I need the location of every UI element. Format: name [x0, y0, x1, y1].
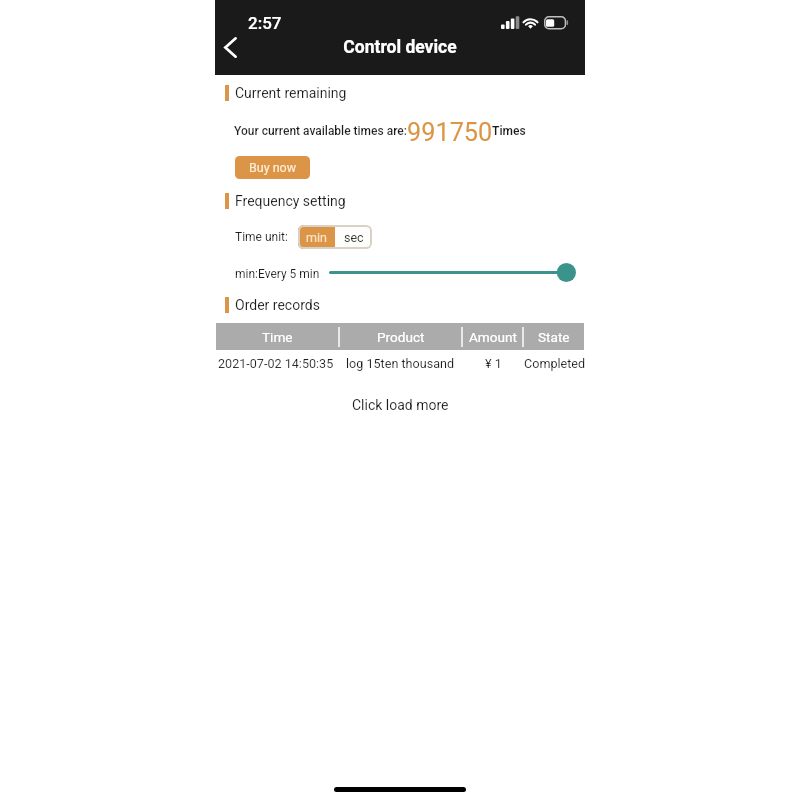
staticText: Click load more	[352, 397, 449, 413]
staticText: Current remaining	[235, 85, 347, 101]
button[interactable]: Back	[215, 32, 245, 62]
button[interactable]: min	[298, 225, 335, 249]
staticText: min	[306, 230, 327, 245]
button[interactable]: Buy now	[235, 156, 310, 179]
button[interactable]: Frequency slider	[329, 262, 576, 283]
staticText: 2:57	[248, 13, 282, 33]
button[interactable]: sec	[335, 225, 372, 249]
staticText: ¥ 1	[485, 356, 502, 371]
staticText: 2021-07-02 14:50:35	[218, 356, 334, 371]
staticText: Times	[492, 124, 526, 138]
staticText: Control device	[215, 37, 585, 58]
staticText: Amount	[469, 329, 517, 345]
staticText: Time	[262, 329, 293, 345]
staticText: log 15ten thousand	[346, 356, 455, 371]
staticText: sec	[344, 230, 364, 245]
staticText: min:Every 5 min	[235, 267, 320, 281]
staticText: Frequency setting	[235, 193, 346, 209]
button[interactable]: 2021-07-02 14:50:35	[215, 352, 585, 374]
staticText: State	[538, 329, 570, 345]
staticText: Your current available times are:	[234, 124, 407, 138]
staticText: Order records	[235, 297, 320, 313]
staticText: Completed	[524, 356, 586, 371]
button[interactable]: Click load more	[215, 395, 585, 415]
staticText: Product	[377, 329, 425, 345]
staticText: Time unit:	[235, 230, 288, 244]
staticText: 991750	[407, 118, 493, 148]
staticText: Buy now	[249, 160, 297, 175]
